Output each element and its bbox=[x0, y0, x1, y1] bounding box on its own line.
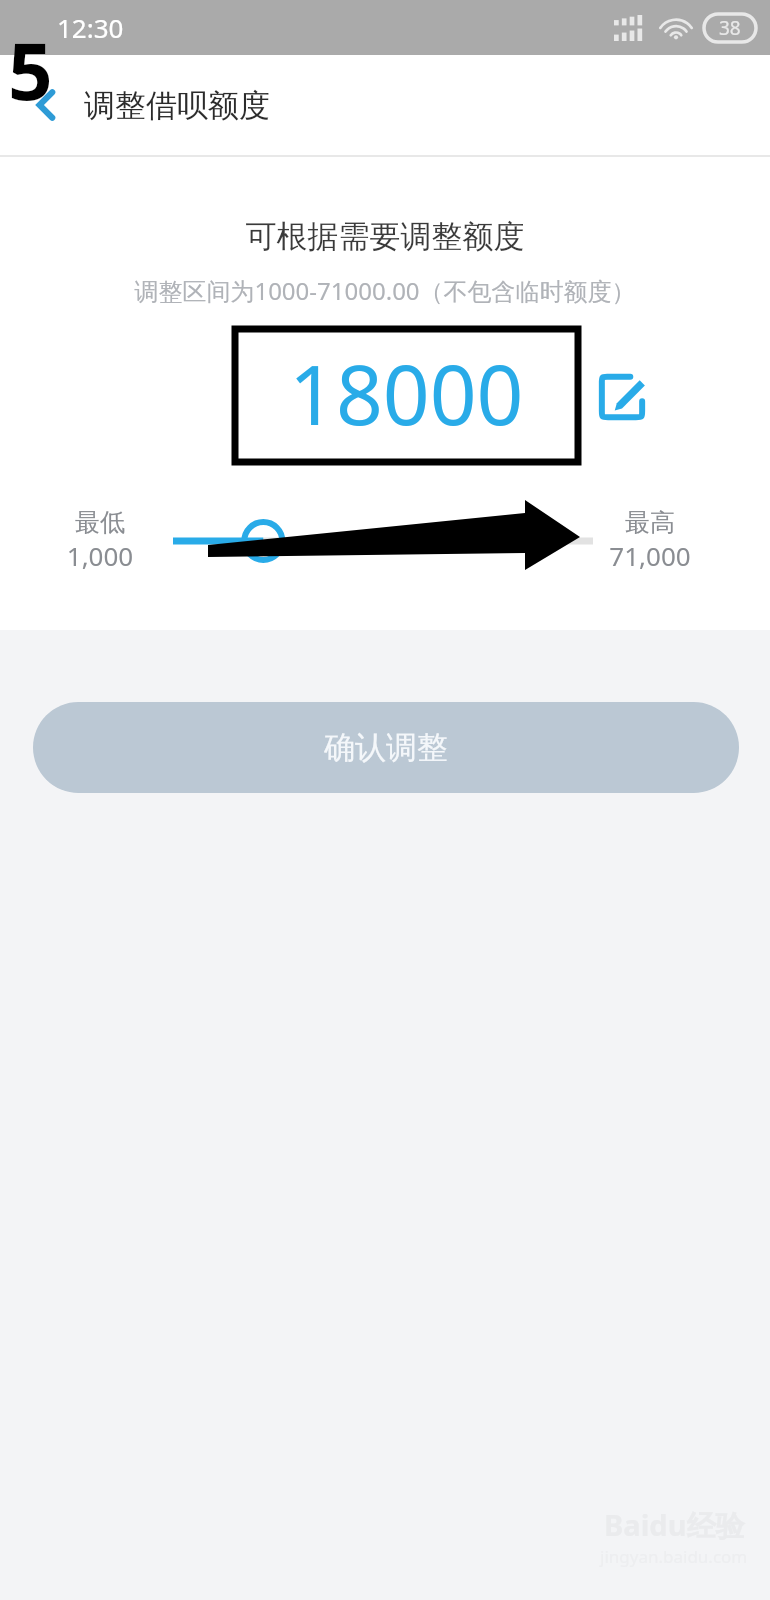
staticText: Baidu经验 bbox=[604, 1505, 745, 1545]
staticText: 1,000 bbox=[55, 538, 145, 573]
staticText: 确认调整 bbox=[324, 728, 448, 767]
staticText: 71,000 bbox=[600, 538, 700, 573]
button[interactable]: Edit amount bbox=[596, 371, 648, 423]
staticText: 可根据需要调整额度 bbox=[0, 217, 770, 256]
button[interactable]: 确认调整 bbox=[33, 702, 739, 793]
button[interactable]: 18000 bbox=[235, 329, 578, 462]
staticText: 最高 bbox=[600, 507, 700, 538]
staticText: 12:30 bbox=[57, 10, 124, 45]
staticText: 38 bbox=[719, 15, 741, 41]
staticText: 调整区间为1000-71000.00（不包含临时额度） bbox=[0, 274, 770, 307]
staticText: 最低 bbox=[55, 507, 145, 538]
button[interactable]: Back bbox=[14, 76, 72, 134]
staticText: 调整借呗额度 bbox=[84, 86, 270, 125]
button[interactable]: Credit limit slider bbox=[163, 517, 603, 565]
staticText: 5 bbox=[8, 17, 53, 123]
staticText: 18000 bbox=[289, 337, 524, 449]
